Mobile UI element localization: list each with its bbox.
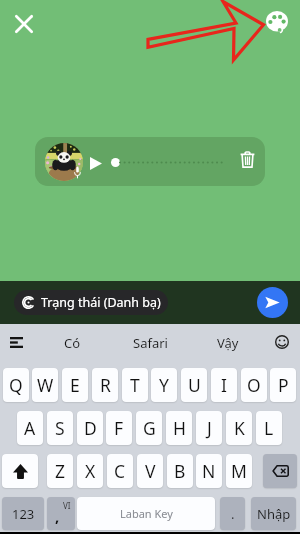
button[interactable]: Delete [35,137,265,186]
button[interactable]: W [32,368,58,402]
staticText: V [145,459,156,483]
button[interactable]: J [196,411,222,445]
button[interactable]: Trạng thái (Danh bạ) [14,290,168,315]
staticText: B [174,459,186,483]
button[interactable]: Background color [266,11,288,33]
button[interactable]: Emoji [272,332,292,352]
button[interactable]: M [226,454,252,488]
staticText: L [264,416,274,440]
staticText: Safari [133,334,168,352]
staticText: Z [55,459,66,483]
staticText: Trạng thái (Danh bạ) [41,294,161,311]
staticText: U [188,373,201,397]
staticText: F [114,416,124,440]
button[interactable]: A [17,411,43,445]
staticText: G [143,416,156,440]
button[interactable]: H [166,411,192,445]
button[interactable]: F [106,411,132,445]
staticText: K [234,416,245,440]
button[interactable]: . [220,497,245,530]
button[interactable]: K [226,411,252,445]
button[interactable]: 123 [2,497,44,530]
staticText: , [55,506,60,526]
button[interactable]: Có [33,329,111,357]
button[interactable]: Comma [47,497,75,530]
staticText: A [24,416,36,440]
staticText: C [114,459,126,483]
button[interactable]: Q [3,368,29,402]
staticText: O [247,373,261,397]
staticText: T [130,373,140,397]
button[interactable]: O [241,368,267,402]
button[interactable]: C [107,454,133,488]
staticText: D [84,416,97,440]
button[interactable]: Delete [240,151,255,168]
staticText: P [278,373,289,397]
button[interactable]: L [256,411,282,445]
button[interactable]: T [122,368,148,402]
button[interactable]: Nhập [251,497,296,530]
button[interactable]: Send [257,287,288,318]
staticText: Q [9,373,23,397]
staticText: R [100,373,111,397]
button[interactable]: Z [47,454,73,488]
button[interactable]: E [62,368,88,402]
staticText: N [202,459,216,483]
button[interactable]: S [47,411,73,445]
staticText: Laban Key [120,506,173,521]
button[interactable]: N [196,454,222,488]
staticText: M [231,459,247,483]
button[interactable]: Safari [111,329,189,357]
staticText: Có [64,334,81,352]
button[interactable]: Keyboard menu [6,332,27,349]
staticText: H [173,416,186,440]
staticText: I [221,373,227,397]
staticText: Vậy [217,334,239,352]
button[interactable]: D [77,411,103,445]
button[interactable]: Close [14,14,34,34]
button[interactable]: Y [151,368,177,402]
button[interactable]: Vậy [189,329,267,357]
button[interactable]: P [270,368,296,402]
button[interactable]: Shift [2,454,38,488]
button[interactable]: V [137,454,163,488]
button[interactable]: U [181,368,207,402]
staticText: 123 [12,505,35,523]
staticText: W [37,373,54,397]
button[interactable]: B [167,454,193,488]
button[interactable]: X [77,454,103,488]
button[interactable]: G [136,411,162,445]
staticText: J [207,416,212,440]
staticText: E [70,373,80,397]
staticText: Y [159,373,169,397]
button[interactable]: I [211,368,237,402]
staticText: Nhập [257,505,291,523]
staticText: . [231,505,235,523]
button[interactable]: R [92,368,118,402]
button[interactable]: Laban Key [77,497,215,530]
staticText: VI [63,500,71,511]
staticText: S [55,416,65,440]
button[interactable]: Backspace [263,454,297,488]
staticText: X [85,459,96,483]
